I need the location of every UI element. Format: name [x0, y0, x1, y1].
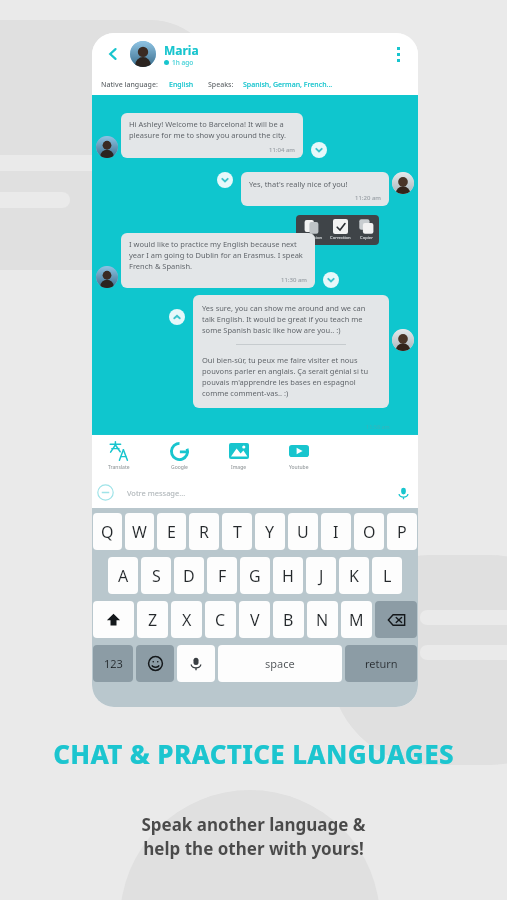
button[interactable]: Expand — [311, 142, 327, 158]
button[interactable]: space — [218, 645, 342, 682]
button[interactable]: V — [239, 601, 270, 638]
staticText: Maria — [164, 42, 199, 58]
button[interactable]: N — [307, 601, 338, 638]
staticText: K — [349, 565, 359, 587]
staticText: Q — [101, 521, 114, 543]
staticText: Y — [265, 521, 275, 543]
button[interactable]: More options — [386, 42, 410, 66]
button[interactable]: C — [205, 601, 236, 638]
staticText: Votre message... — [127, 488, 186, 498]
button[interactable]: B — [273, 601, 304, 638]
button[interactable]: Add attachment — [97, 484, 114, 501]
button[interactable]: Emoji — [136, 645, 174, 682]
staticText: Speak another language & help the other … — [141, 813, 366, 860]
staticText: Google — [171, 464, 188, 471]
staticText: L — [383, 565, 392, 587]
staticText: I would like to practice my English beca… — [129, 239, 307, 271]
staticText: M — [349, 609, 364, 631]
button[interactable]: Votre message... — [119, 482, 392, 504]
staticText: B — [283, 609, 294, 631]
button[interactable]: M — [341, 601, 372, 638]
button[interactable]: Traduction — [301, 219, 322, 241]
staticText: 11:04 am — [269, 146, 295, 154]
button[interactable]: J — [306, 557, 336, 594]
button[interactable]: Z — [137, 601, 168, 638]
staticText: Native language: — [101, 80, 158, 90]
staticText: Yes, that's really nice of you! — [249, 179, 348, 189]
button[interactable]: Yes sure, you can show me around and we … — [193, 295, 389, 408]
staticText: W — [132, 521, 147, 543]
button[interactable]: Dictate — [177, 645, 215, 682]
staticText: Traduction — [301, 235, 322, 241]
staticText: 1h ago — [172, 58, 194, 67]
button[interactable]: Q — [93, 513, 122, 550]
staticText: F — [218, 565, 227, 587]
staticText: return — [365, 656, 398, 671]
button[interactable]: Image — [222, 440, 256, 471]
button[interactable]: S — [141, 557, 171, 594]
button[interactable]: Youtube — [282, 440, 316, 471]
button[interactable]: 123 — [93, 645, 133, 682]
staticText: Copier — [360, 235, 373, 241]
staticText: X — [182, 609, 192, 631]
button[interactable]: P — [387, 513, 417, 550]
staticText: space — [265, 656, 295, 671]
button[interactable]: G — [240, 557, 270, 594]
button[interactable]: Y — [255, 513, 285, 550]
button[interactable]: T — [222, 513, 252, 550]
button[interactable]: K — [339, 557, 369, 594]
staticText: P — [397, 521, 407, 543]
staticText: 123 — [104, 656, 123, 671]
button[interactable]: Yes, that's really nice of you! — [241, 172, 389, 206]
staticText: English — [169, 80, 194, 90]
button[interactable]: D — [174, 557, 204, 594]
button[interactable]: U — [288, 513, 318, 550]
button[interactable]: return — [345, 645, 417, 682]
button[interactable]: Expand — [217, 172, 233, 188]
staticText: N — [316, 609, 329, 631]
staticText: 11:20 am — [355, 194, 381, 202]
button[interactable]: X — [171, 601, 202, 638]
button[interactable]: Copier — [359, 219, 374, 241]
button[interactable]: F — [207, 557, 237, 594]
button[interactable]: I — [321, 513, 351, 550]
staticText: Yes sure, you can show me around and we … — [202, 303, 380, 335]
button[interactable]: L — [372, 557, 402, 594]
staticText: U — [297, 521, 309, 543]
staticText: S — [152, 565, 161, 587]
button[interactable]: Google — [162, 440, 196, 471]
button[interactable]: W — [125, 513, 154, 550]
button[interactable]: E — [157, 513, 186, 550]
staticText: O — [363, 521, 376, 543]
button[interactable]: Correction — [330, 219, 351, 241]
button[interactable]: Back — [100, 41, 126, 67]
staticText: T — [233, 521, 242, 543]
staticText: J — [319, 565, 324, 587]
staticText: Image — [231, 464, 247, 471]
staticText: V — [250, 609, 260, 631]
button[interactable]: Collapse — [169, 309, 185, 325]
staticText: CHAT & PRACTICE LANGUAGES — [53, 736, 454, 771]
staticText: A — [118, 565, 129, 587]
staticText: R — [199, 521, 209, 543]
staticText: 11:30 am — [281, 276, 307, 284]
staticText: D — [183, 565, 195, 587]
staticText: C — [215, 609, 226, 631]
button[interactable]: O — [354, 513, 384, 550]
button[interactable]: Translate — [102, 440, 136, 471]
button[interactable]: Shift — [93, 601, 134, 638]
button[interactable]: A — [108, 557, 138, 594]
staticText: Translate — [108, 464, 130, 471]
staticText: Speaks: — [208, 80, 234, 90]
button[interactable]: R — [189, 513, 219, 550]
button[interactable]: I would like to practice my English beca… — [121, 233, 315, 288]
staticText: E — [167, 521, 176, 543]
button[interactable]: Expand — [323, 272, 339, 288]
staticText: Oui bien-sûr, tu peux me faire visiter e… — [202, 355, 380, 398]
button[interactable]: Voice input — [394, 484, 412, 502]
button[interactable]: Hi Ashley! Welcome to Barcelona! It will… — [121, 113, 303, 158]
button[interactable]: Backspace — [375, 601, 417, 638]
staticText: G — [249, 565, 261, 587]
staticText: H — [282, 565, 294, 587]
button[interactable]: H — [273, 557, 303, 594]
